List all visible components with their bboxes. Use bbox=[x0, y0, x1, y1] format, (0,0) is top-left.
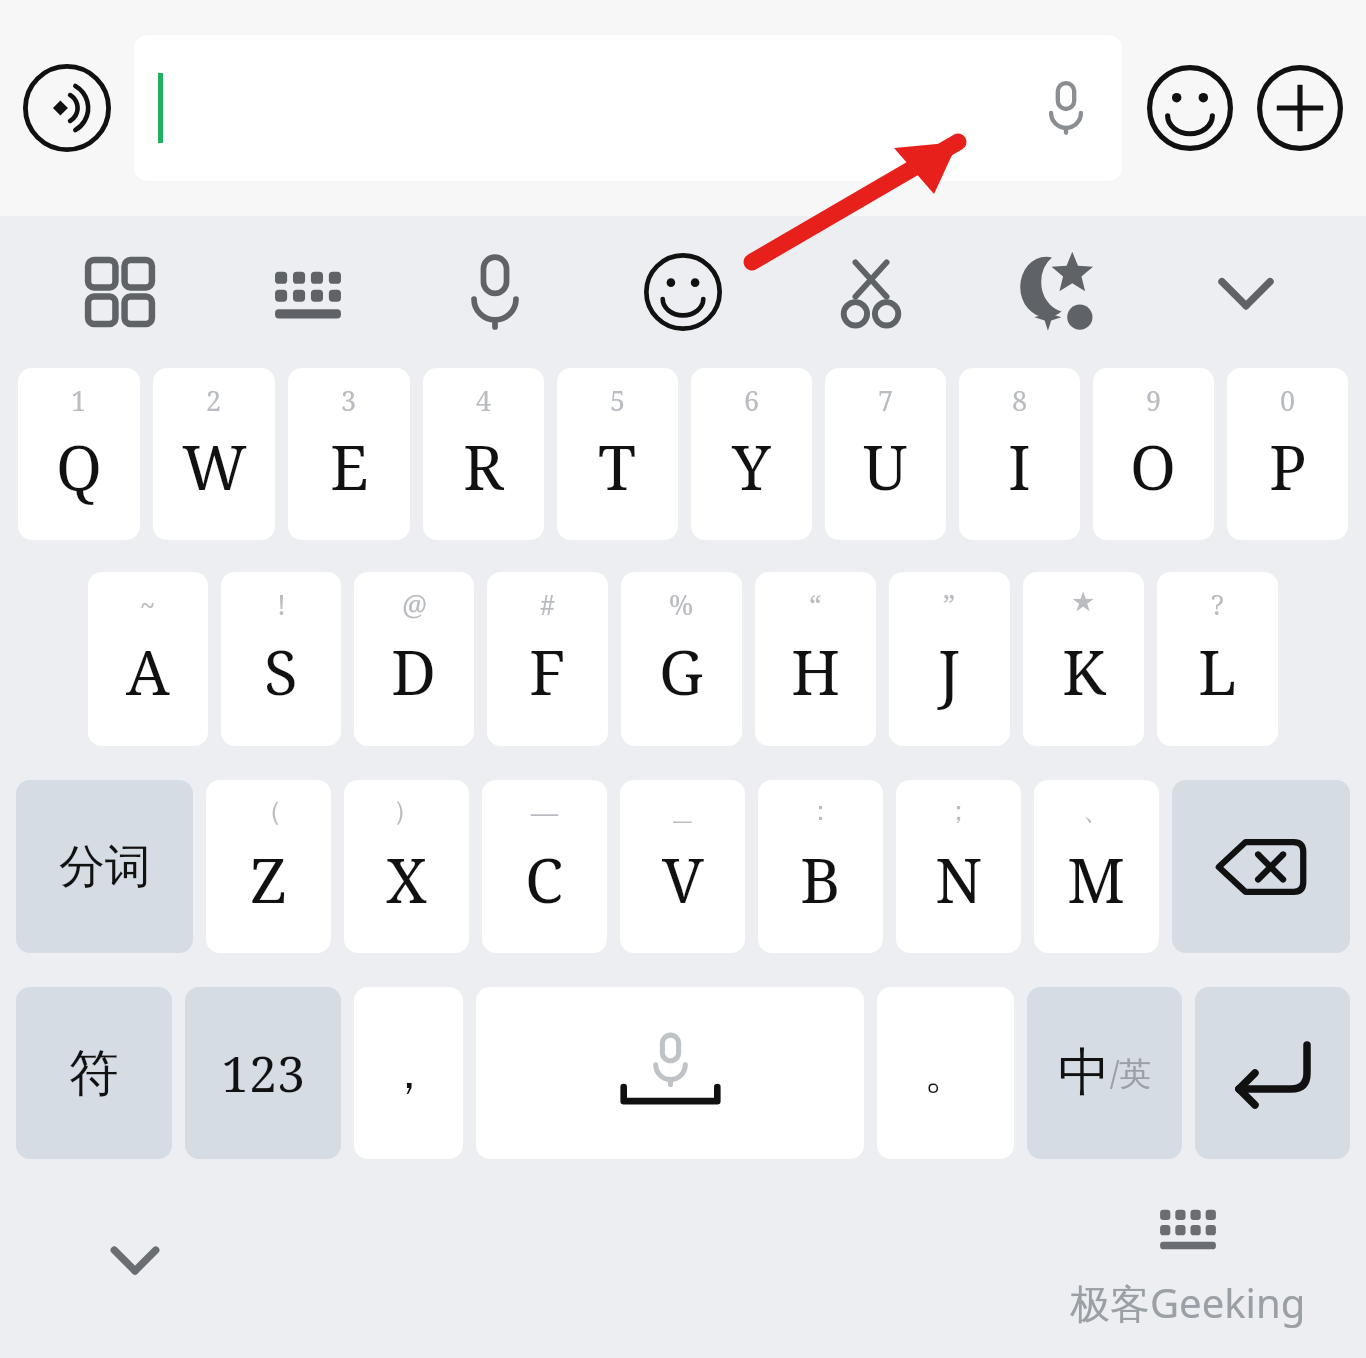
button[interactable]: 0 bbox=[1227, 368, 1348, 540]
staticText: 7 bbox=[878, 382, 894, 419]
button[interactable]: Emoji bbox=[1146, 64, 1234, 152]
button[interactable]: Voice input bbox=[134, 35, 1122, 181]
staticText: 。 bbox=[924, 1046, 968, 1101]
staticText: I bbox=[1008, 424, 1031, 508]
button[interactable]: 、 bbox=[1034, 780, 1159, 953]
staticText: N bbox=[935, 837, 983, 921]
button[interactable]: “ bbox=[755, 572, 876, 746]
button[interactable]: ~ bbox=[88, 572, 208, 746]
staticText: G bbox=[659, 629, 704, 713]
staticText: U bbox=[863, 424, 908, 508]
button[interactable]: 9 bbox=[1093, 368, 1214, 540]
staticText: F bbox=[529, 629, 566, 713]
button[interactable]: Space bbox=[476, 987, 864, 1159]
button[interactable]: ， bbox=[354, 987, 463, 1159]
button[interactable]: ＿ bbox=[620, 780, 745, 953]
button[interactable]: 7 bbox=[825, 368, 946, 540]
staticText: Q bbox=[56, 424, 103, 508]
button[interactable]: 中 bbox=[1027, 987, 1182, 1159]
staticText: H bbox=[791, 629, 841, 713]
button[interactable]: ” bbox=[889, 572, 1010, 746]
staticText: X bbox=[386, 837, 427, 921]
button[interactable]: 符 bbox=[16, 987, 172, 1159]
staticText: 6 bbox=[744, 382, 760, 419]
button[interactable]: ； bbox=[896, 780, 1021, 953]
staticText: 1 bbox=[71, 382, 87, 419]
button[interactable]: Clipboard bbox=[821, 242, 921, 342]
staticText: ★ bbox=[1071, 586, 1096, 617]
staticText: （ bbox=[255, 794, 282, 828]
button[interactable]: Voice input bbox=[445, 242, 545, 342]
staticText: V bbox=[662, 837, 704, 921]
staticText: 、 bbox=[1083, 794, 1110, 828]
button[interactable]: Collapse toolbar bbox=[1196, 242, 1296, 342]
button[interactable]: Voice input bbox=[1036, 78, 1096, 138]
button[interactable]: Emoji bbox=[633, 242, 733, 342]
staticText: K bbox=[1062, 629, 1106, 713]
button[interactable]: — bbox=[482, 780, 607, 953]
button[interactable]: Themes bbox=[1008, 242, 1108, 342]
staticText: ! bbox=[277, 586, 286, 623]
staticText: 0 bbox=[1280, 382, 1296, 419]
button[interactable]: 分词 bbox=[16, 780, 193, 953]
button[interactable]: ： bbox=[758, 780, 883, 953]
button[interactable]: 4 bbox=[423, 368, 544, 540]
button[interactable]: 8 bbox=[959, 368, 1080, 540]
button[interactable]: 。 bbox=[877, 987, 1014, 1159]
staticText: P bbox=[1269, 424, 1307, 508]
staticText: /英 bbox=[1110, 1051, 1152, 1095]
staticText: R bbox=[463, 424, 504, 508]
button[interactable]: 123 bbox=[185, 987, 341, 1159]
staticText: Z bbox=[250, 837, 287, 921]
staticText: M bbox=[1067, 837, 1126, 921]
staticText: 8 bbox=[1012, 382, 1028, 419]
staticText: 中 bbox=[1058, 1040, 1110, 1106]
button[interactable]: Keyboard layout bbox=[258, 242, 358, 342]
button[interactable]: 1 bbox=[18, 368, 140, 540]
staticText: ， bbox=[387, 1046, 431, 1101]
staticText: ~ bbox=[140, 586, 156, 623]
staticText: “ bbox=[809, 586, 822, 623]
button[interactable]: 6 bbox=[691, 368, 812, 540]
staticText: ＿ bbox=[669, 794, 696, 828]
staticText: — bbox=[531, 794, 558, 831]
button[interactable]: 3 bbox=[288, 368, 410, 540]
button[interactable]: Hide keyboard bbox=[92, 1216, 178, 1302]
staticText: J bbox=[938, 629, 961, 713]
staticText: ） bbox=[393, 794, 420, 828]
button[interactable]: Panels bbox=[70, 242, 170, 342]
staticText: 分词 bbox=[59, 838, 151, 896]
staticText: @ bbox=[402, 586, 427, 623]
staticText: 2 bbox=[206, 382, 222, 419]
button[interactable]: Voice input mode bbox=[22, 63, 112, 153]
staticText: E bbox=[330, 424, 369, 508]
staticText: 3 bbox=[341, 382, 357, 419]
staticText: Y bbox=[732, 424, 771, 508]
button[interactable]: # bbox=[487, 572, 608, 746]
staticText: ” bbox=[943, 586, 956, 623]
staticText: O bbox=[1130, 424, 1177, 508]
staticText: 4 bbox=[476, 382, 492, 419]
button[interactable]: Add bbox=[1256, 64, 1344, 152]
staticText: 符 bbox=[69, 1042, 119, 1105]
button[interactable]: （ bbox=[206, 780, 331, 953]
staticText: ? bbox=[1211, 586, 1224, 623]
button[interactable]: Backspace bbox=[1172, 780, 1350, 953]
button[interactable]: 2 bbox=[153, 368, 275, 540]
staticText: W bbox=[182, 424, 247, 508]
button[interactable]: % bbox=[621, 572, 742, 746]
staticText: 9 bbox=[1146, 382, 1162, 419]
button[interactable]: ? bbox=[1157, 572, 1278, 746]
staticText: ； bbox=[945, 794, 972, 828]
staticText: # bbox=[540, 586, 556, 623]
button[interactable]: ★ bbox=[1023, 572, 1144, 746]
staticText: D bbox=[391, 629, 437, 713]
button[interactable]: @ bbox=[354, 572, 474, 746]
button[interactable]: ） bbox=[344, 780, 469, 953]
button[interactable]: Enter bbox=[1195, 987, 1350, 1159]
button[interactable]: 5 bbox=[557, 368, 678, 540]
staticText: T bbox=[598, 424, 637, 508]
staticText: 5 bbox=[610, 382, 626, 419]
button[interactable]: Switch keyboard bbox=[1148, 1187, 1228, 1267]
button[interactable]: ! bbox=[221, 572, 341, 746]
